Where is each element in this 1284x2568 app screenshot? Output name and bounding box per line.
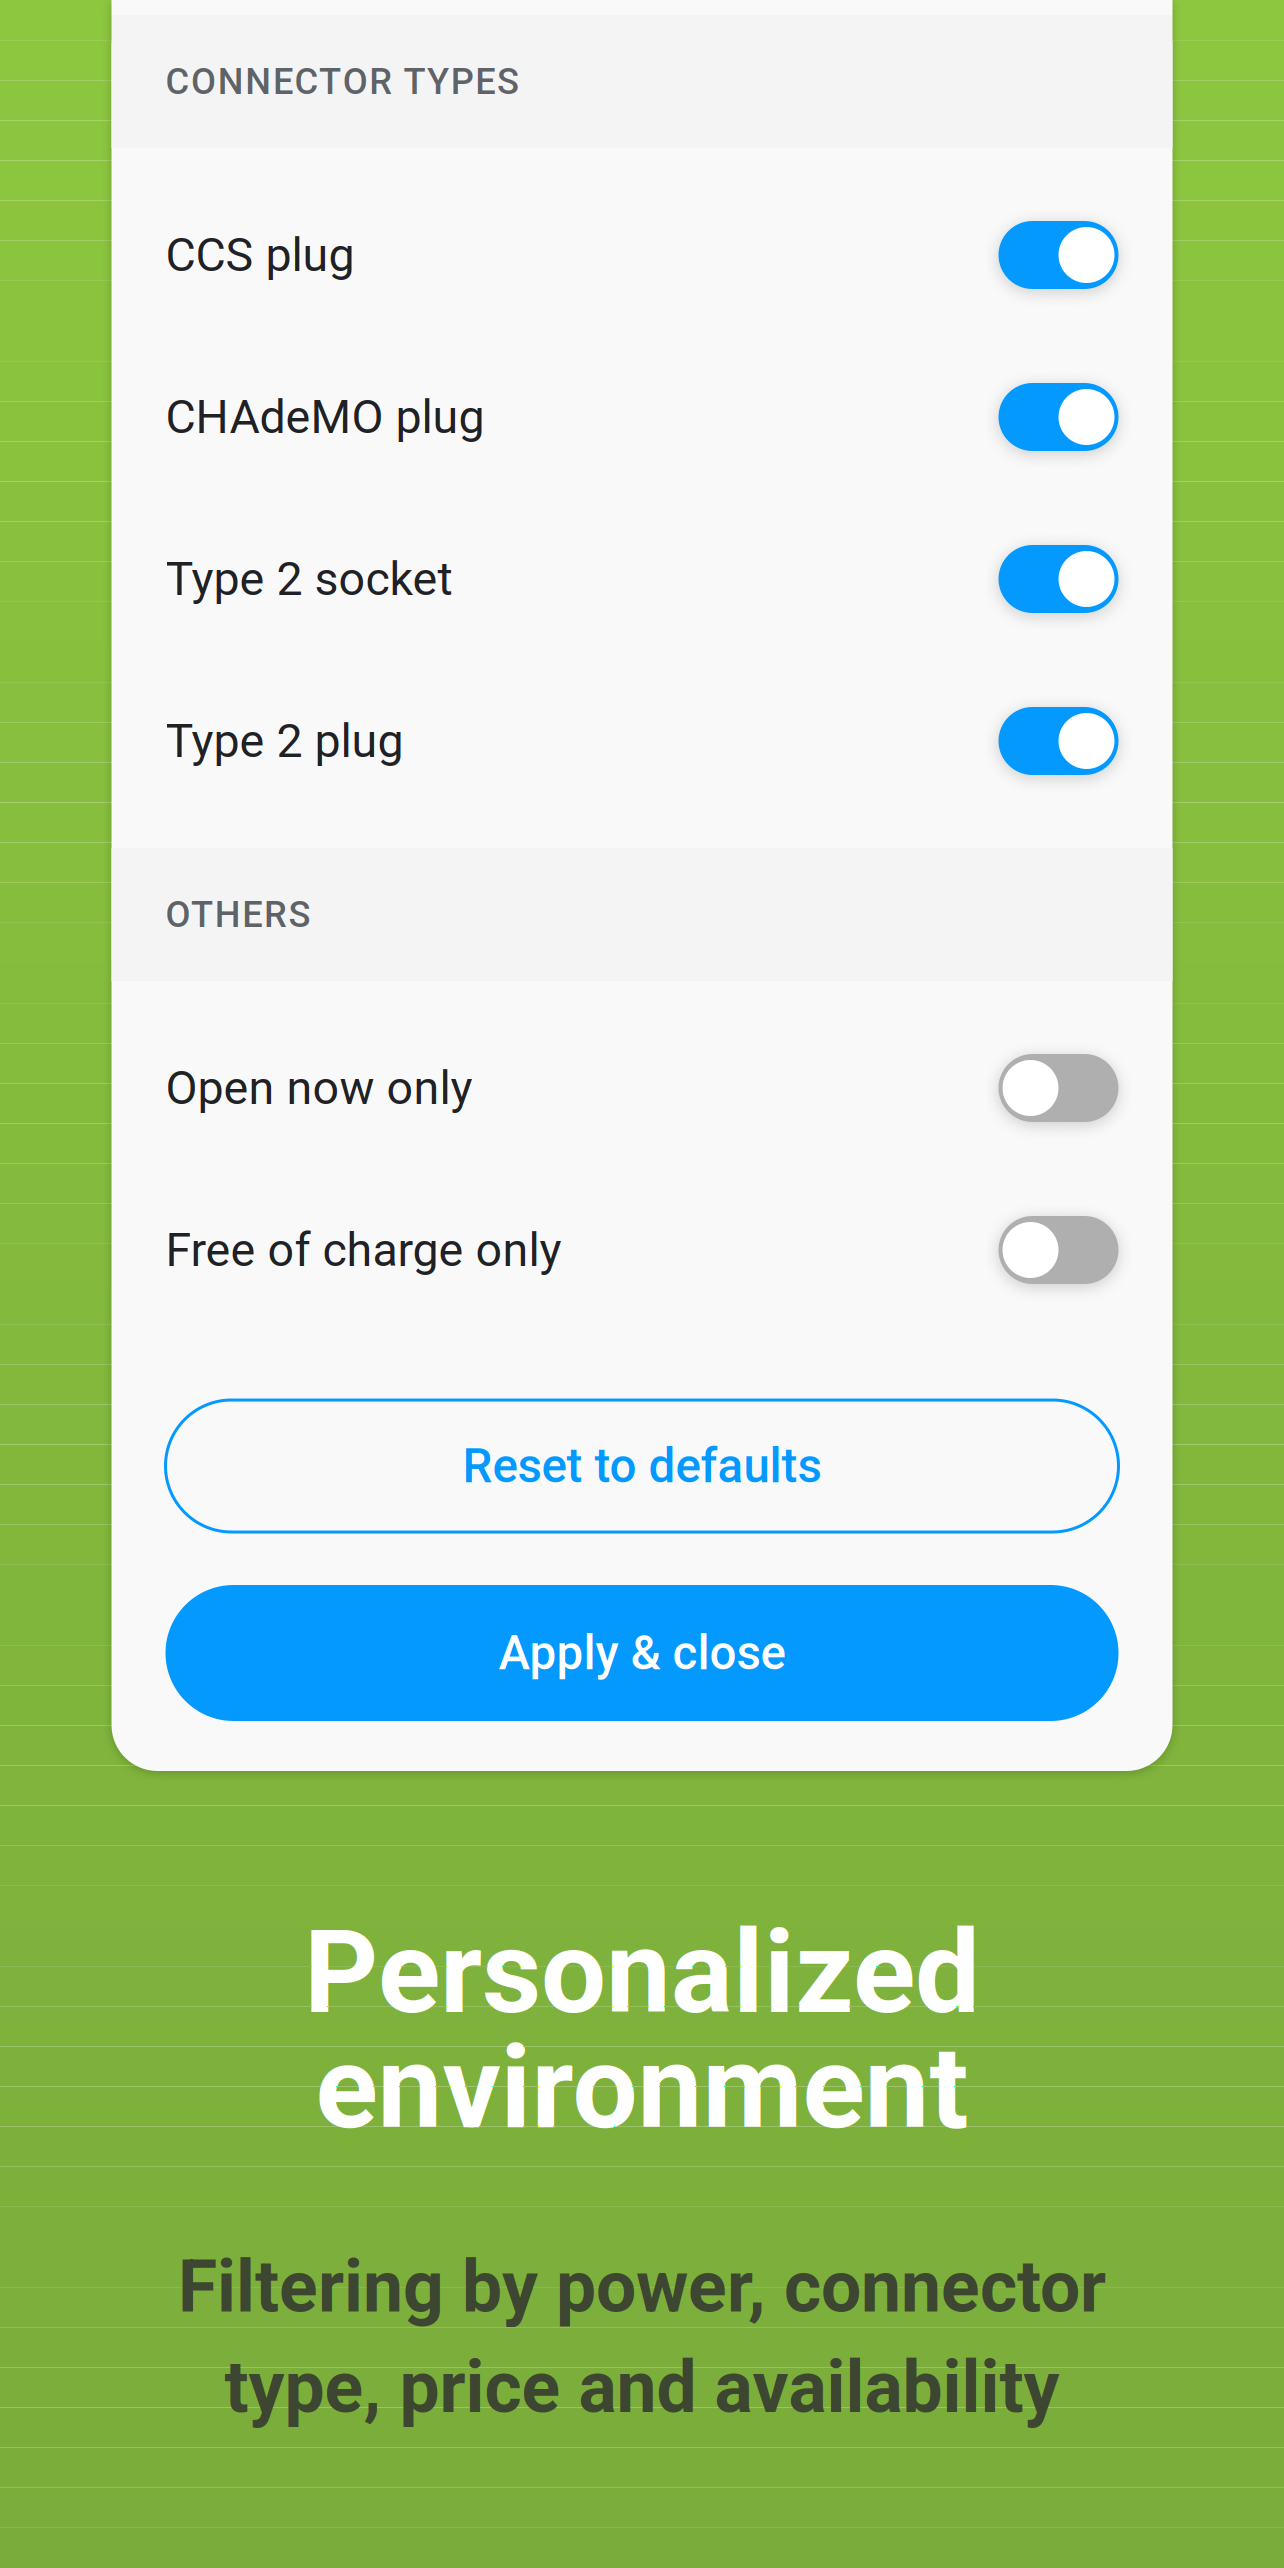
- staticText: Type 2 plug: [165, 714, 403, 768]
- button[interactable]: Apply & close: [165, 1585, 1118, 1721]
- button[interactable]: Reset to defaults: [165, 1400, 1118, 1532]
- staticText: environment: [315, 2020, 968, 2155]
- staticText: type, price and availability: [224, 2346, 1059, 2429]
- button[interactable]: CHAdeMO plug: [111, 336, 1172, 498]
- staticText: Open now only: [165, 1061, 472, 1115]
- staticText: Apply & close: [498, 1625, 785, 1681]
- staticText: CCS plug: [165, 228, 354, 282]
- button[interactable]: Free of charge only: [111, 1169, 1172, 1331]
- staticText: CHAdeMO plug: [165, 390, 484, 444]
- staticText: OTHERS: [165, 893, 310, 936]
- staticText: CONNECTOR TYPES: [165, 60, 519, 103]
- staticText: Free of charge only: [165, 1223, 561, 1277]
- button[interactable]: Type 2 socket: [111, 498, 1172, 660]
- staticText: Reset to defaults: [462, 1438, 821, 1494]
- button[interactable]: Open now only: [111, 1007, 1172, 1169]
- staticText: Type 2 socket: [165, 552, 452, 606]
- staticText: Personalized: [304, 1905, 980, 2040]
- button[interactable]: Type 2 plug: [111, 660, 1172, 822]
- button[interactable]: CCS plug: [111, 174, 1172, 336]
- staticText: Filtering by power, connector: [178, 2245, 1106, 2329]
